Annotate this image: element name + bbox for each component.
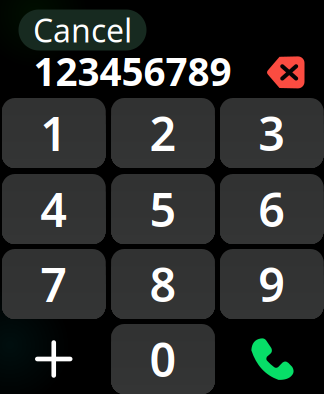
button[interactable]: 2 (111, 98, 215, 168)
staticText: Cancel (33, 9, 132, 51)
staticText: 2 (149, 102, 176, 164)
button[interactable]: 8 (111, 249, 215, 319)
button[interactable]: 0 (111, 324, 215, 394)
button[interactable]: Add pause (2, 324, 105, 394)
staticText: 4 (40, 178, 67, 240)
staticText: 8 (149, 253, 176, 315)
button[interactable]: 5 (111, 174, 215, 244)
staticText: 7 (40, 253, 67, 315)
staticText: 9 (258, 253, 285, 315)
staticText: 1 (40, 102, 67, 164)
button[interactable]: Cancel (18, 9, 146, 50)
staticText: 5 (149, 178, 176, 240)
button[interactable]: Delete (258, 49, 312, 95)
button[interactable]: Call (220, 324, 323, 394)
staticText: 3 (258, 102, 285, 164)
button[interactable]: 9 (220, 249, 323, 319)
staticText: 123456789 (33, 45, 231, 97)
button[interactable]: 1 (2, 98, 105, 168)
button[interactable]: 4 (2, 174, 105, 244)
staticText: 6 (258, 178, 285, 240)
button[interactable]: 6 (220, 174, 323, 244)
staticText: 0 (149, 328, 176, 390)
button[interactable]: 3 (220, 98, 323, 168)
button[interactable]: 7 (2, 249, 105, 319)
